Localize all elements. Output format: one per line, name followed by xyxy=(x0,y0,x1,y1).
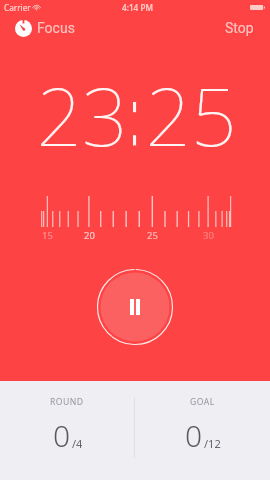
staticText: 20 xyxy=(84,229,95,242)
staticText: Focus xyxy=(37,18,75,39)
staticText: 0 xyxy=(185,415,203,456)
staticText: 25 xyxy=(147,229,158,242)
staticText: /4 xyxy=(72,436,83,451)
staticText: 0 xyxy=(53,415,71,456)
button[interactable]: Stop xyxy=(220,12,259,44)
staticText: 25 xyxy=(145,60,237,169)
button[interactable]: GOAL xyxy=(135,381,270,480)
staticText: ROUND xyxy=(50,396,84,408)
staticText: Stop xyxy=(225,18,254,38)
button[interactable]: Focus xyxy=(10,14,80,43)
staticText: GOAL xyxy=(190,396,215,408)
staticText: 4:14 PM xyxy=(122,2,153,13)
staticText: Carrier xyxy=(4,2,31,13)
staticText: 30 xyxy=(203,229,214,242)
staticText: 15 xyxy=(42,229,53,242)
button[interactable]: ROUND xyxy=(0,381,134,480)
button[interactable]: Pause xyxy=(96,268,174,346)
staticText: 23 xyxy=(36,60,128,169)
staticText: /12 xyxy=(204,436,221,451)
